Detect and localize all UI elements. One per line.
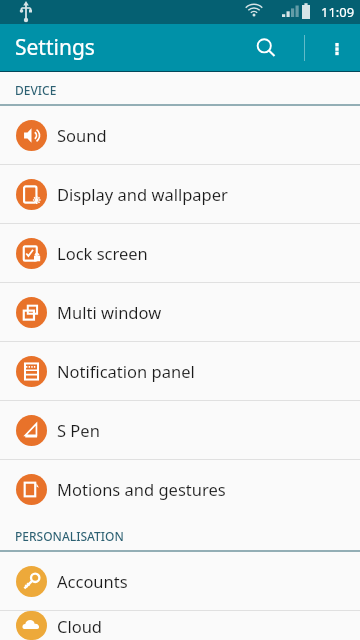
staticText: Sound — [57, 124, 107, 146]
button[interactable]: Multi window — [0, 283, 360, 341]
staticText: Display and wallpaper — [57, 183, 228, 205]
button[interactable]: Motions and gestures — [0, 460, 360, 518]
button[interactable]: Cloud — [0, 611, 360, 640]
staticText: Lock screen — [57, 242, 148, 264]
button[interactable]: Accounts — [0, 552, 360, 610]
button[interactable]: Notification panel — [0, 342, 360, 400]
staticText: DEVICE — [15, 82, 57, 98]
staticText: PERSONALISATION — [15, 528, 124, 544]
staticText: Notification panel — [57, 360, 195, 382]
button[interactable]: Search — [244, 26, 288, 70]
button[interactable]: Lock screen — [0, 224, 360, 282]
button[interactable]: S Pen — [0, 401, 360, 459]
button[interactable]: More options — [314, 24, 360, 71]
staticText: Accounts — [57, 570, 128, 592]
staticText: Cloud — [57, 615, 103, 637]
button[interactable]: Display and wallpaper — [0, 165, 360, 223]
staticText: Settings — [15, 33, 95, 62]
staticText: Motions and gestures — [57, 478, 226, 500]
staticText: S Pen — [57, 419, 100, 441]
staticText: Multi window — [57, 301, 162, 323]
staticText: 11:09 — [321, 3, 355, 21]
button[interactable]: Sound — [0, 106, 360, 164]
